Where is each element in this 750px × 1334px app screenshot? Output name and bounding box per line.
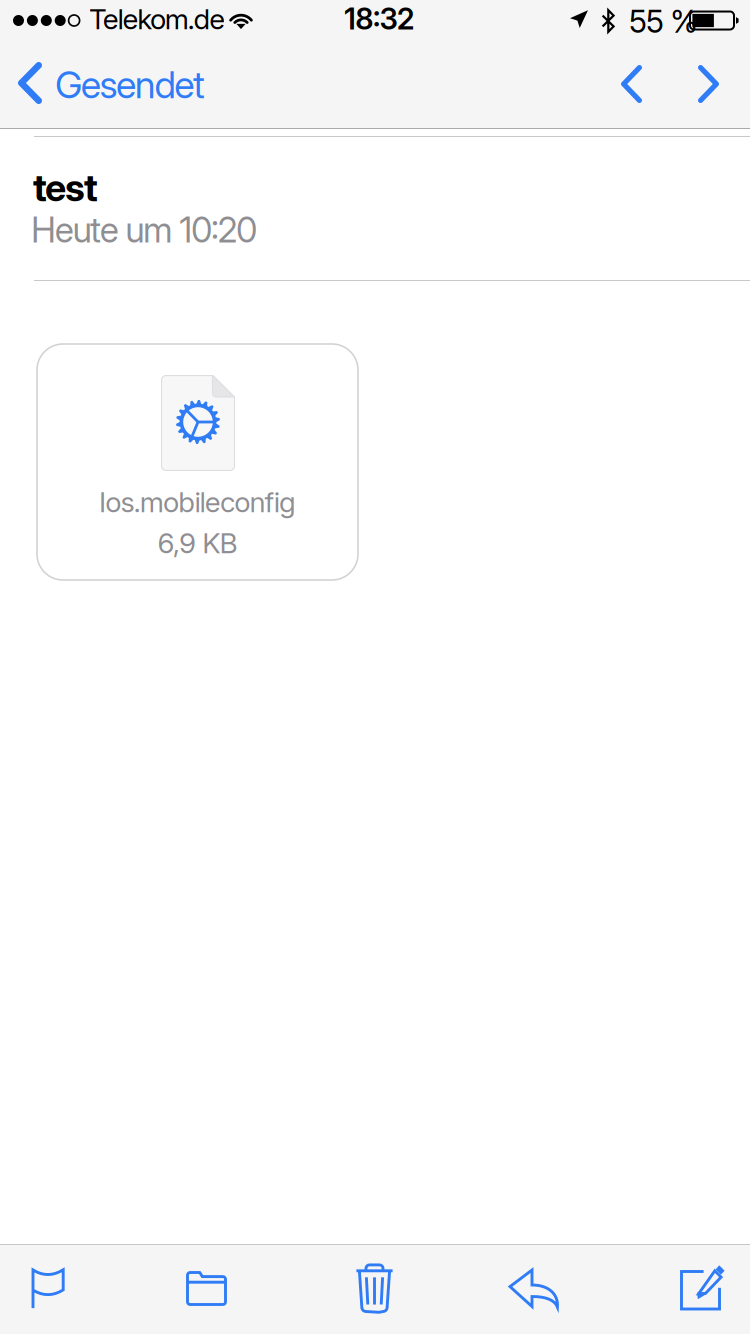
button[interactable]: Ios.mobileconfig <box>37 344 358 580</box>
button[interactable]: Reply <box>470 1245 600 1334</box>
button[interactable]: Compose <box>610 1245 740 1334</box>
staticText: Gesendet <box>55 62 205 107</box>
button[interactable]: Delete <box>310 1245 440 1334</box>
staticText: Ios.mobileconfig <box>99 485 296 519</box>
staticText: Telekom.de <box>89 2 225 36</box>
staticText: 55 % <box>629 3 698 40</box>
staticText: Heute um 10:20 <box>31 209 257 251</box>
button[interactable]: Gesendet <box>0 40 232 128</box>
button[interactable]: Previous message <box>594 40 670 128</box>
staticText: 18:32 <box>344 1 415 36</box>
button[interactable]: Flag <box>0 1245 130 1334</box>
staticText: test <box>33 165 98 210</box>
button[interactable]: Move to folder <box>140 1245 270 1334</box>
staticText: 6,9 KB <box>157 526 237 560</box>
button[interactable]: Next message <box>670 40 746 128</box>
